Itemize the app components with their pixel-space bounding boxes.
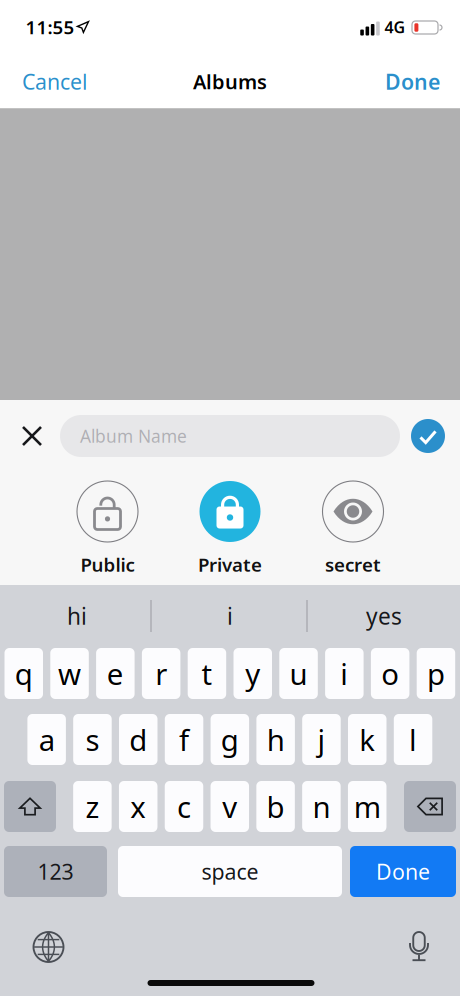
- staticText: secret: [325, 552, 381, 577]
- staticText: a: [39, 720, 55, 759]
- staticText: Done: [376, 857, 430, 886]
- button[interactable]: a: [27, 714, 66, 765]
- button[interactable]: f: [165, 714, 203, 765]
- staticText: x: [130, 787, 146, 826]
- staticText: t: [201, 654, 212, 693]
- staticText: Private: [198, 552, 262, 577]
- staticText: r: [155, 654, 167, 693]
- button[interactable]: Next keyboard: [25, 924, 71, 970]
- button[interactable]: [118, 846, 342, 897]
- staticText: g: [221, 720, 239, 759]
- button[interactable]: l: [394, 714, 432, 765]
- staticText: q: [15, 654, 33, 693]
- button[interactable]: y: [233, 648, 272, 699]
- staticText: Public: [80, 552, 134, 577]
- staticText: e: [107, 654, 124, 693]
- staticText: 4G: [384, 16, 405, 38]
- button[interactable]: n: [302, 781, 341, 832]
- button[interactable]: r: [142, 648, 180, 699]
- button[interactable]: Cancel: [0, 54, 102, 109]
- staticText: Albums: [193, 68, 267, 95]
- button[interactable]: c: [165, 781, 203, 832]
- button[interactable]: hi: [2, 585, 152, 647]
- staticText: m: [354, 787, 381, 826]
- staticText: hi: [67, 601, 87, 631]
- button[interactable]: i: [155, 585, 305, 647]
- staticText: y: [245, 654, 260, 693]
- button[interactable]: q: [4, 648, 43, 699]
- staticText: n: [312, 787, 330, 826]
- staticText: j: [317, 720, 325, 759]
- button[interactable]: m: [348, 781, 386, 832]
- button[interactable]: g: [211, 714, 249, 765]
- button[interactable]: Save album: [406, 414, 450, 458]
- staticText: yes: [366, 601, 402, 631]
- button[interactable]: d: [119, 714, 157, 765]
- button[interactable]: Delete: [404, 781, 456, 832]
- button[interactable]: Dictation: [396, 925, 442, 971]
- button[interactable]: i: [325, 648, 364, 699]
- button[interactable]: e: [96, 648, 135, 699]
- button[interactable]: Shift: [4, 781, 56, 832]
- button[interactable]: j: [302, 714, 341, 765]
- staticText: b: [267, 787, 285, 826]
- staticText: w: [58, 654, 81, 693]
- button[interactable]: Done: [371, 54, 460, 109]
- staticText: p: [427, 654, 445, 693]
- button[interactable]: s: [73, 714, 112, 765]
- button[interactable]: w: [50, 648, 89, 699]
- button[interactable]: [4, 846, 107, 897]
- staticText: z: [85, 787, 99, 826]
- staticText: Cancel: [22, 67, 88, 96]
- staticText: i: [227, 601, 233, 631]
- button[interactable]: [350, 846, 456, 897]
- button[interactable]: Public: [49, 481, 165, 577]
- button[interactable]: b: [256, 781, 295, 832]
- button[interactable]: Cancel album name: [5, 414, 59, 458]
- button[interactable]: h: [256, 714, 295, 765]
- staticText: o: [381, 654, 399, 693]
- staticText: d: [129, 720, 147, 759]
- staticText: u: [289, 654, 307, 693]
- staticText: 11:55: [25, 15, 74, 39]
- button[interactable]: u: [279, 648, 318, 699]
- button[interactable]: p: [417, 648, 455, 699]
- staticText: s: [85, 720, 99, 759]
- button[interactable]: o: [371, 648, 409, 699]
- button[interactable]: Album Name: [60, 415, 400, 457]
- staticText: f: [179, 720, 189, 759]
- staticText: i: [340, 654, 348, 693]
- button[interactable]: x: [119, 781, 157, 832]
- staticText: space: [201, 857, 258, 886]
- button[interactable]: t: [188, 648, 226, 699]
- button[interactable]: z: [73, 781, 112, 832]
- button[interactable]: v: [210, 781, 249, 832]
- staticText: 123: [37, 857, 73, 886]
- staticText: h: [267, 720, 285, 759]
- staticText: v: [222, 787, 237, 826]
- button[interactable]: Private: [172, 481, 288, 577]
- staticText: l: [409, 720, 417, 759]
- button[interactable]: secret: [295, 481, 411, 577]
- staticText: c: [177, 787, 191, 826]
- staticText: k: [359, 720, 375, 759]
- staticText: Done: [385, 67, 440, 96]
- button[interactable]: k: [348, 714, 386, 765]
- staticText: Album Name: [80, 424, 187, 447]
- button[interactable]: yes: [309, 585, 459, 647]
